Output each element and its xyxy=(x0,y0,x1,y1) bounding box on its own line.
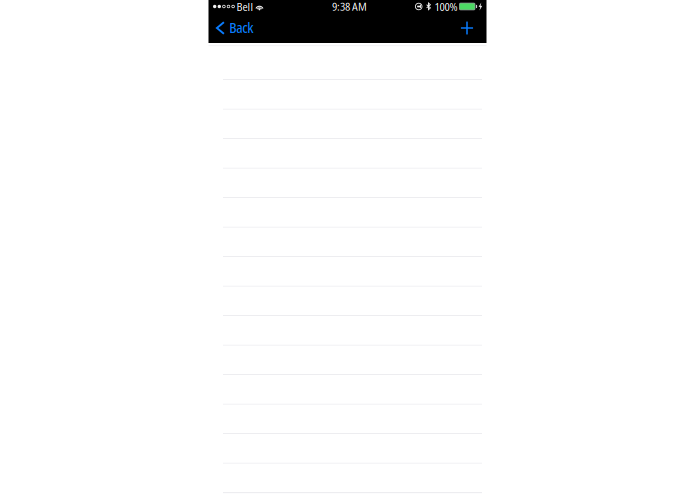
button[interactable] xyxy=(208,346,486,375)
staticText: 100% xyxy=(435,0,458,14)
button[interactable]: Back xyxy=(208,13,263,43)
staticText: Back xyxy=(229,18,253,37)
button[interactable] xyxy=(208,169,486,198)
button[interactable] xyxy=(208,228,486,257)
staticText: 9:38 AM xyxy=(332,0,367,14)
button[interactable] xyxy=(208,464,486,493)
button[interactable]: Add xyxy=(448,13,486,43)
button[interactable] xyxy=(208,110,486,139)
button[interactable] xyxy=(208,405,486,434)
button[interactable] xyxy=(208,51,486,80)
staticText: Bell xyxy=(236,0,253,14)
button[interactable] xyxy=(208,287,486,316)
